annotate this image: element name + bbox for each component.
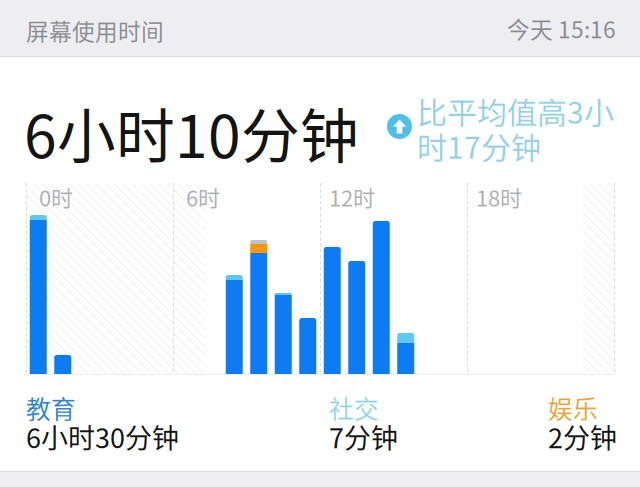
staticText: 社交 — [329, 390, 379, 426]
staticText: 娱乐 — [548, 390, 598, 426]
button[interactable]: 娱乐 — [548, 388, 614, 454]
staticText: 时17分钟 — [417, 124, 541, 167]
staticText: 6小时30分钟 — [26, 417, 179, 456]
button[interactable]: 6小时10分钟 — [24, 68, 638, 172]
staticText: 18时 — [476, 181, 522, 213]
staticText: 0时 — [39, 181, 73, 213]
staticText: 今天 15:16 — [507, 12, 616, 45]
staticText: 12时 — [329, 181, 375, 213]
button[interactable]: 社交 — [329, 388, 449, 454]
staticText: 6小时10分钟 — [24, 90, 359, 175]
button[interactable]: 屏幕使用时间 — [0, 0, 640, 57]
staticText: 比平均值高3小 — [417, 89, 614, 132]
staticText: 屏幕使用时间 — [26, 14, 164, 47]
staticText: 教育 — [26, 390, 76, 426]
staticText: 6时 — [186, 181, 220, 213]
staticText: 2分钟 — [548, 417, 617, 456]
staticText: 7分钟 — [329, 417, 398, 456]
button[interactable]: 教育 — [26, 388, 226, 454]
